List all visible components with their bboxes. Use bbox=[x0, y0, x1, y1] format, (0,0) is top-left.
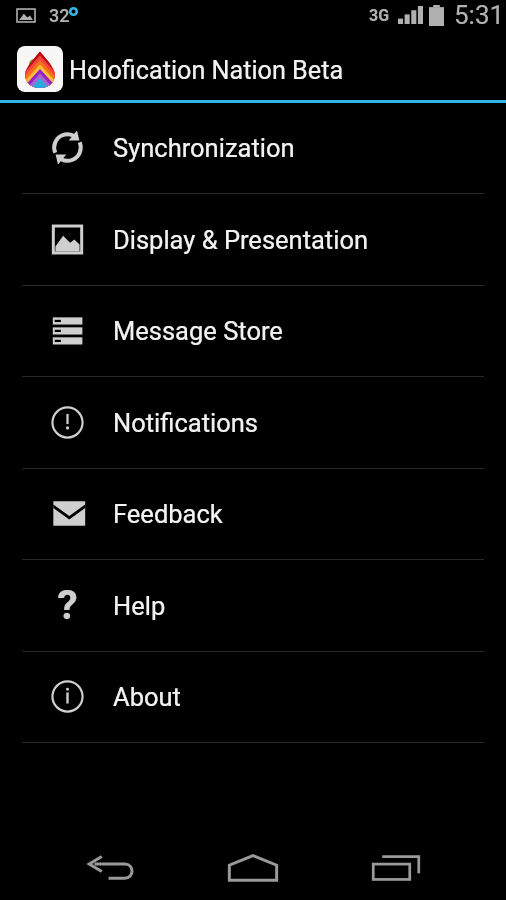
staticText: Notifications bbox=[113, 408, 258, 438]
button[interactable]: Back bbox=[71, 836, 155, 900]
staticText: ? bbox=[57, 581, 78, 629]
staticText: Feedback bbox=[113, 499, 223, 529]
button[interactable]: Display & Presentation bbox=[0, 195, 506, 285]
staticText: Display & Presentation bbox=[113, 225, 369, 255]
staticText: 3G bbox=[369, 6, 390, 25]
button[interactable]: Feedback bbox=[0, 469, 506, 559]
button[interactable]: Recents bbox=[354, 836, 438, 900]
staticText: Help bbox=[113, 591, 166, 621]
staticText: 32 bbox=[49, 5, 70, 26]
button[interactable]: ? bbox=[0, 561, 506, 651]
staticText: Message Store bbox=[113, 316, 283, 346]
staticText: 5:31 bbox=[454, 0, 505, 30]
button[interactable]: Message Store bbox=[0, 286, 506, 376]
button[interactable]: About bbox=[0, 652, 506, 742]
staticText: About bbox=[113, 682, 181, 712]
button[interactable]: Notifications bbox=[0, 378, 506, 468]
button[interactable]: Synchronization bbox=[0, 103, 506, 193]
button[interactable]: Home bbox=[211, 836, 295, 900]
staticText: Synchronization bbox=[113, 133, 295, 163]
button[interactable]: Holofication Nation Beta bbox=[0, 36, 506, 100]
staticText: Holofication Nation Beta bbox=[69, 56, 344, 86]
